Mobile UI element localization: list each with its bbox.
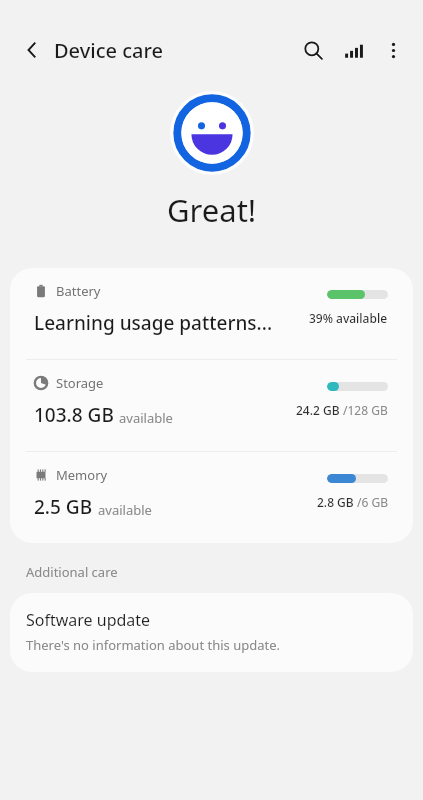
staticText: 2.5 GB <box>34 494 93 520</box>
staticText: available <box>119 409 173 427</box>
staticText: 39% available <box>309 310 388 326</box>
staticText: Software update <box>26 609 151 631</box>
button[interactable]: More options <box>373 30 413 70</box>
button[interactable]: Search <box>293 30 333 70</box>
staticText: available <box>98 501 152 519</box>
staticText: Additional care <box>26 563 118 581</box>
button[interactable]: Software update <box>10 593 413 672</box>
staticText: /128 GB <box>343 402 388 418</box>
staticText: Great! <box>167 189 257 231</box>
staticText: 103.8 GB <box>34 402 114 428</box>
staticText: There's no information about this update… <box>26 636 280 654</box>
button[interactable]: Battery <box>10 268 413 359</box>
staticText: Storage <box>56 374 104 392</box>
staticText: Battery <box>56 282 101 300</box>
button[interactable]: Storage <box>10 360 413 451</box>
button[interactable]: Memory <box>10 452 413 543</box>
staticText: 2.8 GB <box>317 494 354 510</box>
staticText: /6 GB <box>357 494 388 510</box>
button[interactable]: Usage statistics <box>333 30 373 70</box>
staticText: Learning usage patterns... <box>34 310 273 336</box>
button[interactable]: Back <box>14 32 50 68</box>
staticText: 24.2 GB <box>296 402 340 418</box>
staticText: Device care <box>54 37 163 64</box>
staticText: Memory <box>56 466 108 484</box>
